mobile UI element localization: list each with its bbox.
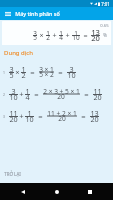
staticText: = xyxy=(58,67,63,77)
staticText: = xyxy=(34,89,39,99)
staticText: 3 xyxy=(9,64,14,74)
staticText: 3 xyxy=(69,64,74,74)
staticText: 20 xyxy=(93,92,102,102)
staticText: % xyxy=(103,32,107,38)
staticText: 1 xyxy=(74,29,78,38)
staticText: 3 × 1 xyxy=(39,65,54,74)
staticText: + xyxy=(19,89,24,99)
button[interactable]: Open navigation drawer xyxy=(0,7,15,20)
staticText: 3 xyxy=(11,86,16,96)
staticText: 4 xyxy=(25,92,30,102)
staticText: 1 xyxy=(46,29,50,38)
staticText: 2 xyxy=(46,33,50,42)
staticText: 20 xyxy=(91,33,100,43)
staticText: + xyxy=(65,30,70,40)
button[interactable]: Back xyxy=(13,183,33,200)
staticText: 10 xyxy=(25,114,34,124)
staticText: 20 xyxy=(57,92,65,101)
staticText: 1 xyxy=(59,29,63,38)
staticText: 2 xyxy=(3,92,5,97)
staticText: 13 xyxy=(91,27,100,37)
staticText: 20 xyxy=(58,114,66,123)
staticText: 5 xyxy=(33,33,37,42)
staticText: 1 xyxy=(27,108,32,118)
staticText: 20 xyxy=(9,114,18,124)
staticText: 13 xyxy=(90,108,99,118)
staticText: 11 xyxy=(93,86,102,96)
staticText: TRỞ LẠI xyxy=(4,171,21,177)
staticText: 5 xyxy=(9,70,14,80)
staticText: 10 xyxy=(72,33,80,42)
staticText: 1 xyxy=(25,86,30,96)
staticText: 11 + 2 × 1 xyxy=(47,109,77,118)
staticText: × xyxy=(15,67,20,77)
button[interactable]: TRỞ LẠI xyxy=(2,169,23,179)
staticText: = xyxy=(81,111,86,121)
staticText: Máy tính phân số xyxy=(15,10,60,17)
staticText: 2 × 3 + 5 × 1 xyxy=(43,87,80,96)
staticText: 10 xyxy=(9,92,18,102)
staticText: × xyxy=(39,30,44,40)
staticText: 1 xyxy=(21,64,26,74)
staticText: = xyxy=(83,30,88,40)
staticText: + xyxy=(19,111,24,121)
staticText: 10 xyxy=(67,70,76,80)
button[interactable]: Home xyxy=(47,183,67,200)
staticText: 5 × 2 xyxy=(39,70,54,79)
staticText: 4 xyxy=(59,33,63,42)
staticText: 20 xyxy=(90,114,99,124)
staticText: 3 xyxy=(33,29,37,38)
staticText: = xyxy=(30,67,35,77)
staticText: 1 xyxy=(3,70,5,75)
staticText: Dung dịch xyxy=(4,49,33,57)
staticText: = xyxy=(38,111,43,121)
staticText: 3 xyxy=(3,114,5,119)
staticText: + xyxy=(52,30,57,40)
staticText: = xyxy=(84,89,89,99)
staticText: 2 xyxy=(21,70,26,80)
staticText: 0.65 xyxy=(100,23,109,29)
staticText: 11 xyxy=(9,108,18,118)
staticText: 7:01 xyxy=(101,1,110,7)
button[interactable]: Recent apps xyxy=(80,183,100,200)
